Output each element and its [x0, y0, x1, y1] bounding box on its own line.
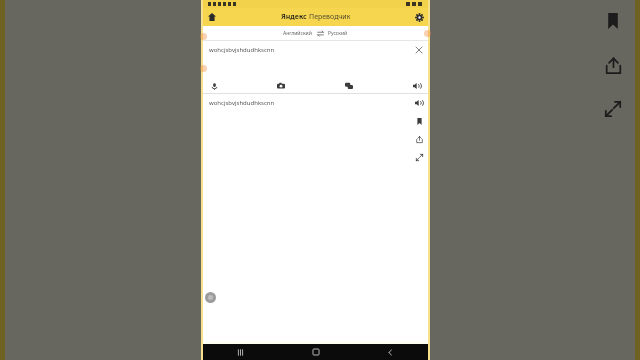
button[interactable]: Listen source: [410, 79, 424, 93]
button[interactable]: Add to favourites: [412, 114, 426, 128]
button[interactable]: Fullscreen: [412, 150, 426, 164]
button[interactable]: Voice input: [207, 79, 221, 93]
button[interactable]: Assistant: [205, 292, 216, 303]
button[interactable]: Home: [278, 344, 353, 360]
button[interactable]: Clear: [412, 43, 426, 57]
staticText: Русский: [328, 30, 348, 37]
button[interactable]: Recents: [203, 344, 278, 360]
button[interactable]: Camera translate: [274, 79, 288, 93]
button[interactable]: Английский: [280, 30, 315, 37]
button[interactable]: Русский: [325, 30, 351, 37]
button[interactable]: Settings: [410, 8, 428, 26]
button[interactable]: Conversation: [342, 79, 356, 93]
button[interactable]: Share translation: [412, 132, 426, 146]
button[interactable]: Home: [203, 8, 221, 26]
button[interactable]: Share: [596, 48, 630, 82]
button[interactable]: Swap languages: [315, 28, 325, 38]
staticText: Переводчик: [309, 12, 351, 22]
staticText: Английский: [283, 30, 312, 37]
button[interactable]: Bookmark: [596, 4, 630, 38]
button[interactable]: Expand: [596, 92, 630, 126]
button[interactable]: Back: [353, 344, 428, 360]
staticText: Яндекс: [281, 12, 307, 22]
button[interactable]: Listen translation: [412, 96, 426, 110]
staticText: wohcjsbvjshdudhkscnn: [209, 99, 275, 107]
staticText: wohcjsbvjshdudhkscnn: [209, 46, 275, 54]
